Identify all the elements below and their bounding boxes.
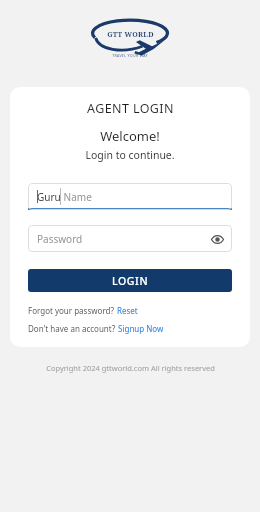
staticText: Welcome! [100, 127, 160, 145]
staticText: LOGIN [112, 274, 149, 288]
staticText: Don't have an account? [28, 323, 118, 334]
staticText: TRAVEL YOUR WAY [112, 53, 148, 58]
staticText: GTT WORLD [107, 30, 154, 40]
button[interactable]: Password [28, 225, 232, 252]
staticText: Name [61, 190, 92, 204]
staticText: Signup Now [118, 323, 164, 334]
button[interactable]: Signup Now [118, 323, 164, 334]
staticText: Password [37, 232, 83, 246]
button[interactable]: LOGIN [28, 269, 232, 292]
staticText: Reset [117, 305, 138, 316]
button[interactable]: Guru [28, 183, 232, 210]
staticText: Copyright 2024 gttworld.com All rights r… [46, 363, 215, 373]
staticText: AGENT LOGIN [87, 100, 174, 117]
staticText: Forgot your password? [28, 305, 117, 316]
button[interactable]: Show password [208, 230, 226, 248]
staticText: Login to continue. [85, 148, 175, 162]
button[interactable]: Reset [117, 305, 138, 316]
staticText: Guru [37, 190, 61, 204]
